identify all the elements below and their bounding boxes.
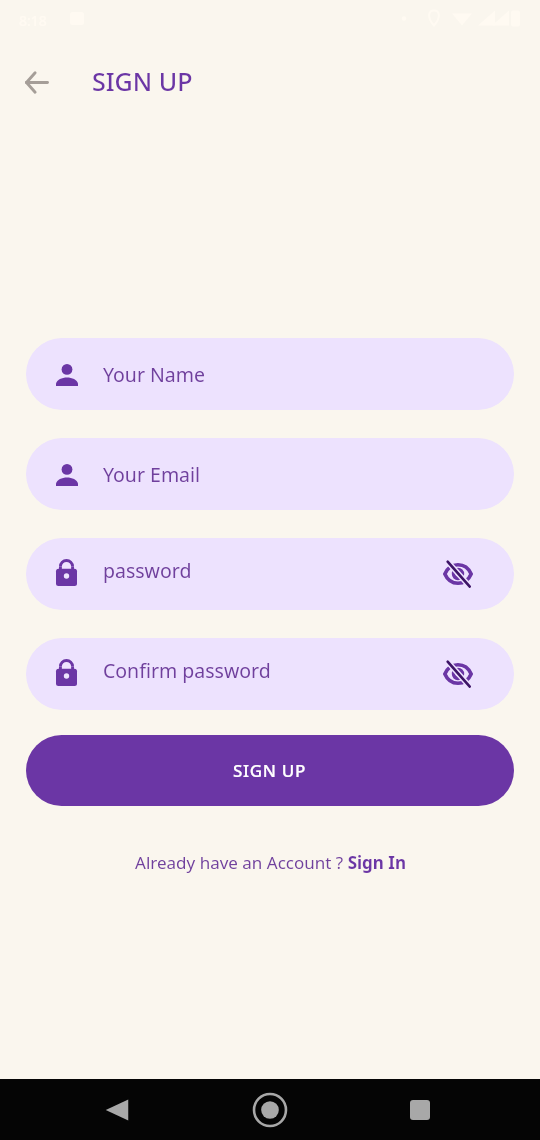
button[interactable]: Confirm password (26, 638, 514, 710)
button[interactable]: Back (97, 1090, 137, 1130)
button[interactable]: Already have an Account ? Sign In (127, 845, 414, 880)
button[interactable]: Your Email (26, 438, 514, 510)
staticText: password (103, 557, 192, 584)
button[interactable]: Home (250, 1090, 290, 1130)
button[interactable]: Your Name (26, 338, 514, 410)
staticText: Your Email (103, 461, 201, 488)
button[interactable]: Toggle password visibility (434, 550, 482, 598)
button[interactable]: Toggle password visibility (434, 650, 482, 698)
staticText: SIGN UP (233, 759, 307, 782)
button[interactable]: Recent apps (400, 1090, 440, 1130)
staticText: Your Name (103, 361, 206, 388)
button[interactable]: password (26, 538, 514, 610)
staticText: Already have an Account ? Sign In (135, 851, 406, 874)
button[interactable]: Back (14, 60, 58, 104)
button[interactable]: SIGN UP (26, 735, 514, 806)
staticText: Confirm password (103, 657, 271, 684)
staticText: SIGN UP (92, 64, 193, 98)
